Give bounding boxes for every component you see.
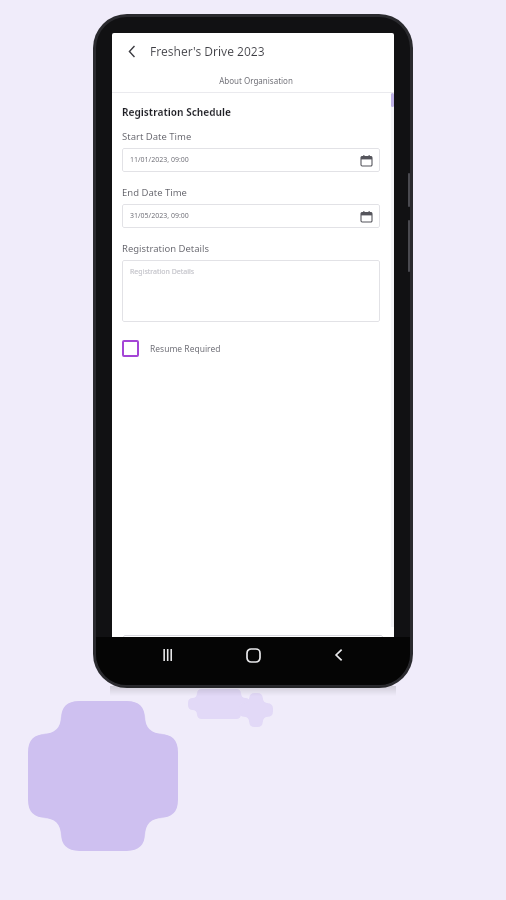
button[interactable]: 31/05/2023, 09:00: [122, 204, 380, 228]
button[interactable]: Home: [239, 641, 267, 669]
staticText: Registration Details: [130, 267, 195, 277]
staticText: Resume Required: [150, 343, 221, 355]
staticText: About Organisation: [219, 75, 293, 86]
button[interactable]: About Organisation: [118, 69, 394, 93]
button[interactable]: Resume Required: [122, 340, 221, 357]
button[interactable]: Back: [325, 641, 353, 669]
staticText: End Date Time: [122, 186, 187, 199]
staticText: 31/05/2023, 09:00: [130, 211, 189, 221]
button[interactable]: Recents: [154, 641, 182, 669]
staticText: Fresher's Drive 2023: [150, 43, 265, 59]
button[interactable]: Registration Details: [122, 260, 380, 322]
staticText: Start Date Time: [122, 130, 192, 143]
staticText: Save Changes: [224, 642, 283, 654]
button[interactable]: Save Changes: [123, 635, 383, 661]
button[interactable]: 11/01/2023, 09:00: [122, 148, 380, 172]
staticText: Registration Details: [122, 242, 210, 255]
staticText: 11/01/2023, 09:00: [130, 155, 189, 165]
staticText: Registration Schedule: [122, 105, 232, 119]
button[interactable]: Back: [122, 41, 142, 61]
